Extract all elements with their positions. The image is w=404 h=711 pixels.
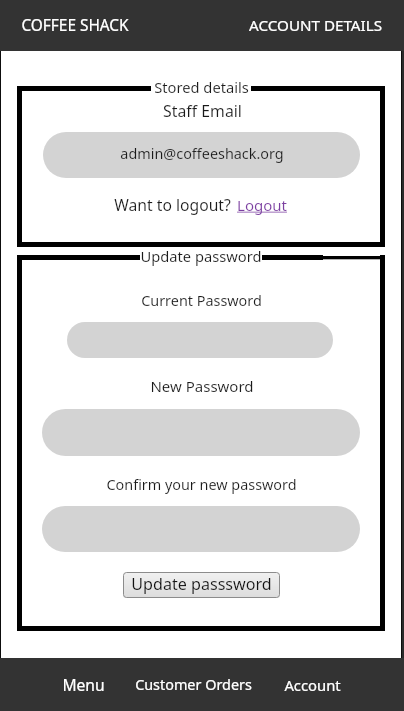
button[interactable]: New password <box>42 409 360 456</box>
button[interactable]: ACCOUNT DETAILS <box>239 7 404 44</box>
button[interactable]: Customer Orders <box>127 661 260 709</box>
staticText: admin@coffeeshack.org <box>120 144 284 164</box>
staticText: Staff Email <box>163 100 242 122</box>
staticText: Customer Orders <box>135 675 252 695</box>
button[interactable]: Staff email <box>43 132 360 178</box>
staticText: Update password <box>140 246 262 266</box>
staticText: ACCOUNT DETAILS <box>249 15 382 36</box>
staticText: Menu <box>62 674 105 695</box>
staticText: COFFEE SHACK <box>21 15 129 36</box>
button[interactable]: COFFEE SHACK <box>0 7 139 44</box>
button[interactable]: Current password <box>67 322 333 358</box>
staticText: Stored details <box>154 77 249 97</box>
button[interactable]: Confirm your new password <box>42 506 360 552</box>
button[interactable]: Logout <box>237 195 287 215</box>
button[interactable]: Update passsword <box>123 572 280 598</box>
staticText: Update passsword <box>131 573 272 595</box>
staticText: Want to logout? <box>114 194 231 215</box>
staticText: Account <box>284 675 341 695</box>
button[interactable]: Account <box>276 661 349 709</box>
staticText: Current Password <box>141 291 262 311</box>
staticText: New Password <box>150 376 254 396</box>
button[interactable]: Menu <box>54 660 113 709</box>
staticText: Confirm your new password <box>106 475 297 495</box>
